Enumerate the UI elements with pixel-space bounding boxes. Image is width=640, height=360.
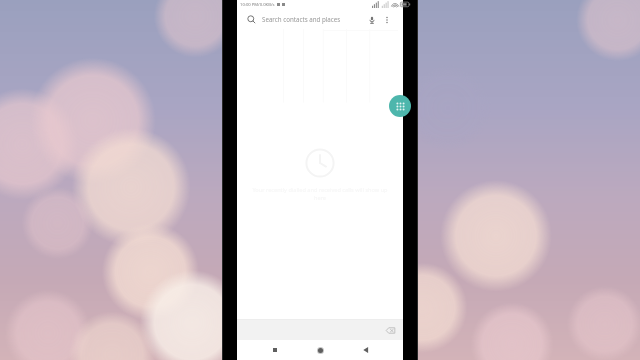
button[interactable]: Search contacts and places: [241, 11, 399, 27]
button[interactable]: Voice search: [365, 13, 378, 26]
button[interactable]: Backspace: [237, 320, 403, 340]
button[interactable]: Back: [358, 342, 374, 358]
button[interactable]: Dial pad: [389, 95, 411, 117]
button[interactable]: Recents: [267, 342, 283, 358]
staticText: 10:00 PM/0.0KB/s: [240, 2, 275, 8]
staticText: Search contacts and places: [262, 15, 341, 23]
button[interactable]: Home: [312, 342, 328, 358]
button[interactable]: More options: [380, 13, 393, 26]
button[interactable]: Backspace: [384, 324, 396, 336]
